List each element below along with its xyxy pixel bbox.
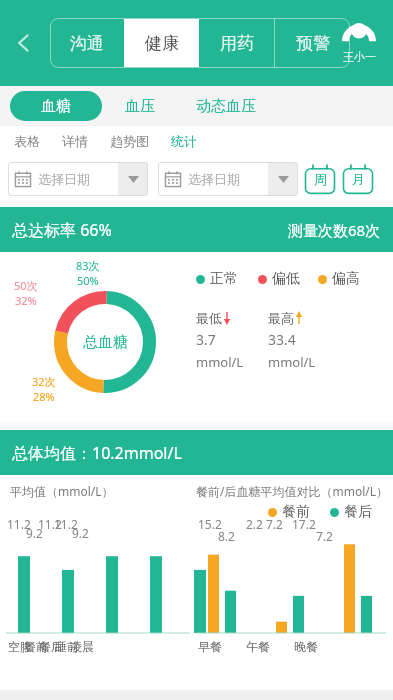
- button[interactable]: 血压: [102, 91, 178, 121]
- staticText: 总达标率 66%: [12, 219, 112, 241]
- staticText: 沟通: [70, 33, 104, 54]
- staticText: 7.2: [316, 528, 333, 544]
- staticText: 午餐: [246, 639, 270, 654]
- staticText: 最低: [196, 310, 222, 326]
- staticText: 测量次数68次: [288, 220, 381, 240]
- staticText: 9.2: [26, 525, 43, 541]
- staticText: 详情: [62, 133, 88, 149]
- staticText: 月: [352, 171, 365, 187]
- button[interactable]: 预警: [275, 18, 350, 68]
- button[interactable]: Profile 王小一: [331, 23, 387, 64]
- button[interactable]: 表格: [14, 133, 40, 149]
- staticText: 偏低: [272, 270, 300, 288]
- button[interactable]: 健康: [124, 18, 199, 68]
- staticText: 偏高: [332, 270, 360, 288]
- staticText: 餐后: [39, 639, 63, 654]
- staticText: 最高: [268, 310, 294, 326]
- staticText: 血压: [125, 97, 155, 116]
- button[interactable]: 动态血压: [178, 91, 274, 121]
- staticText: 15.2: [198, 516, 222, 532]
- button[interactable]: 血糖: [10, 91, 102, 121]
- staticText: 33.4: [268, 330, 296, 349]
- button[interactable]: 选择日期: [158, 162, 298, 196]
- staticText: 健康: [145, 33, 179, 54]
- staticText: 32%: [15, 293, 37, 308]
- staticText: 餐后: [344, 503, 372, 521]
- button[interactable]: 统计: [171, 133, 197, 149]
- staticText: 83次: [76, 258, 100, 273]
- staticText: mmol/L: [268, 353, 316, 371]
- staticText: 11.2: [38, 516, 62, 532]
- staticText: 7.2: [266, 516, 283, 532]
- staticText: 血糖: [41, 97, 71, 116]
- staticText: 凌晨: [70, 639, 94, 654]
- staticText: 餐前: [282, 503, 310, 521]
- button[interactable]: 用药: [199, 18, 274, 68]
- staticText: 50次: [14, 278, 38, 293]
- staticText: 睡前: [55, 639, 79, 654]
- button[interactable]: 月: [342, 164, 374, 194]
- staticText: 50%: [77, 273, 99, 288]
- staticText: 平均值（mmol/L）: [10, 483, 114, 499]
- staticText: 32次: [32, 374, 56, 389]
- staticText: 王小一: [343, 50, 376, 64]
- staticText: 晚餐: [294, 639, 318, 654]
- staticText: 11.2: [7, 516, 31, 532]
- button[interactable]: 趋势图: [110, 133, 149, 149]
- staticText: 表格: [14, 133, 40, 149]
- staticText: mmol/L: [196, 353, 244, 371]
- staticText: 趋势图: [110, 133, 149, 149]
- staticText: 餐前: [24, 639, 48, 654]
- staticText: 总体均值：10.2mmol/L: [12, 442, 182, 464]
- button[interactable]: 详情: [62, 133, 88, 149]
- staticText: 早餐: [198, 639, 222, 654]
- staticText: 正常: [210, 270, 238, 288]
- staticText: 选择日期: [188, 171, 268, 187]
- staticText: 预警: [296, 33, 330, 54]
- staticText: 3.7: [196, 330, 216, 349]
- button[interactable]: 沟通: [50, 18, 124, 68]
- staticText: 餐前/后血糖平均值对比（mmol/L）: [196, 483, 389, 499]
- staticText: 空腹: [8, 639, 32, 654]
- staticText: 8.2: [218, 528, 235, 544]
- staticText: 用药: [220, 33, 254, 54]
- button[interactable]: Back: [6, 25, 42, 61]
- button[interactable]: 选择日期: [8, 162, 148, 196]
- staticText: 11.2: [54, 516, 78, 532]
- staticText: 统计: [171, 133, 197, 149]
- staticText: 9.2: [72, 525, 89, 541]
- staticText: 2.2: [246, 516, 263, 532]
- staticText: 周: [314, 171, 327, 187]
- button[interactable]: 周: [304, 164, 336, 194]
- staticText: 28%: [33, 389, 55, 404]
- staticText: 动态血压: [196, 97, 256, 116]
- staticText: 总血糖: [83, 333, 128, 352]
- staticText: 选择日期: [38, 171, 118, 187]
- staticText: 17.2: [292, 516, 316, 532]
